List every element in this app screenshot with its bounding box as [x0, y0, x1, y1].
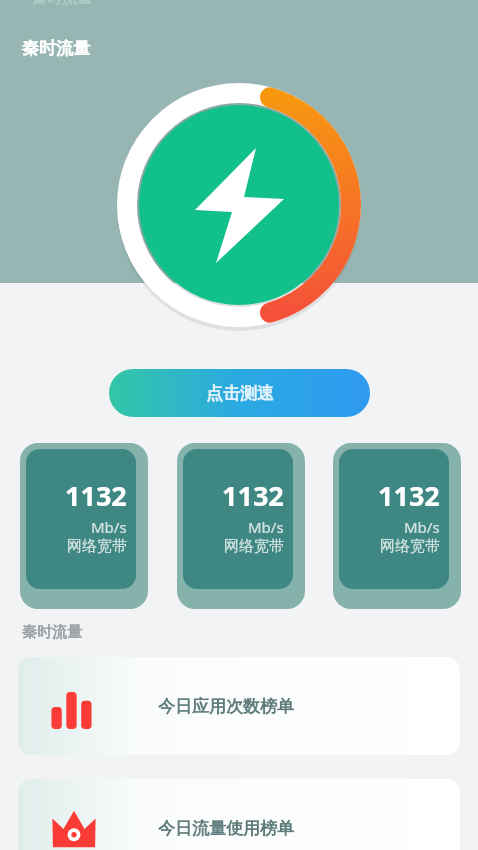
button[interactable]: 1132 [333, 443, 461, 609]
button[interactable]: 今日流量使用榜单 [18, 779, 460, 850]
button[interactable]: 1132 [20, 443, 148, 609]
staticText: 网络宽带 [224, 537, 284, 556]
staticText: 网络宽带 [380, 537, 440, 556]
staticText: 1132 [378, 477, 440, 514]
staticText: 秦时流量 [32, 0, 92, 8]
staticText: 秦时流量 [22, 38, 90, 59]
staticText: 今日流量使用榜单 [158, 818, 294, 839]
staticText: Mb/s [91, 517, 127, 537]
button[interactable]: 点击测速 [109, 369, 370, 417]
staticText: 今日应用次数榜单 [158, 696, 294, 717]
button[interactable]: 1132 [177, 443, 305, 609]
staticText: Mb/s [248, 517, 284, 537]
staticText: Mb/s [404, 517, 440, 537]
staticText: 1132 [222, 477, 284, 514]
staticText: 点击测速 [206, 383, 274, 404]
staticText: 网络宽带 [67, 537, 127, 556]
button[interactable]: Speed test dial [113, 79, 365, 331]
staticText: 秦时流量 [22, 623, 82, 642]
staticText: 1132 [65, 477, 127, 514]
button[interactable]: 今日应用次数榜单 [18, 657, 460, 755]
